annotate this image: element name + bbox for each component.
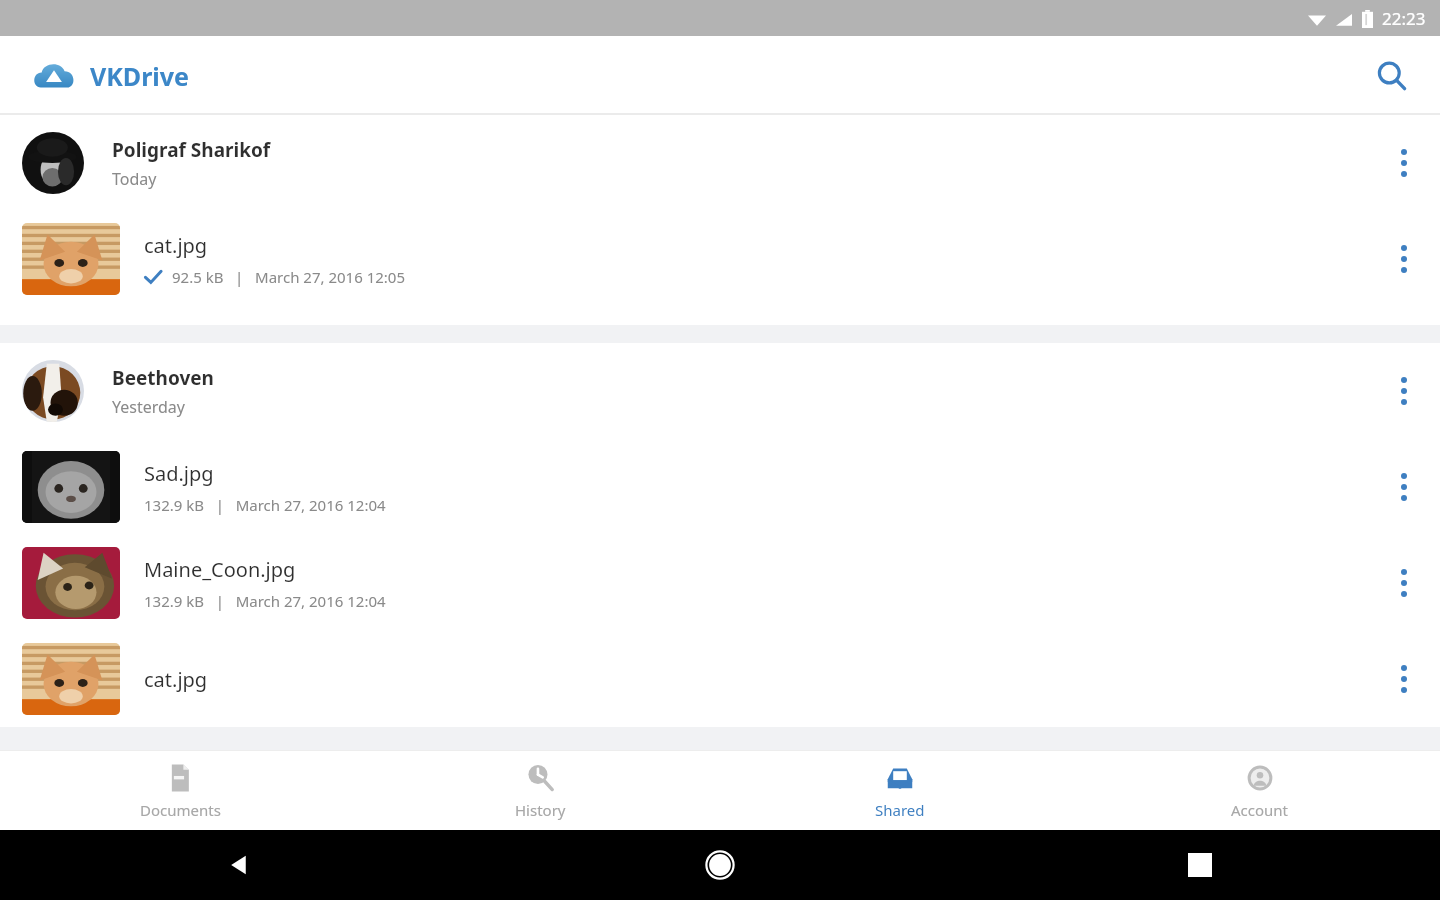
staticText: 92.5 kB | March 27, 2016 12:05 (172, 267, 406, 287)
button[interactable]: Account (1080, 750, 1440, 830)
staticText: Poligraf Sharikof (112, 137, 271, 163)
button[interactable]: Shared (720, 750, 1080, 830)
staticText: 132.9 kB | March 27, 2016 12:04 (144, 591, 386, 611)
button[interactable]: cat.jpg (0, 631, 1440, 727)
button[interactable]: Search (1364, 48, 1420, 104)
button[interactable]: History (360, 750, 720, 830)
button[interactable]: Poligraf Sharikof (0, 115, 1440, 211)
staticText: VKDrive (90, 59, 190, 93)
button[interactable]: Documents (0, 750, 360, 830)
staticText: cat.jpg (144, 232, 208, 259)
staticText: Account (1231, 800, 1289, 820)
staticText: cat.jpg (144, 666, 208, 693)
button[interactable]: VKDrive (32, 59, 190, 93)
button[interactable]: Recent apps (960, 830, 1440, 900)
button[interactable]: More options (1376, 135, 1432, 191)
button[interactable]: Beethoven (0, 343, 1440, 439)
button[interactable]: More options (1376, 459, 1432, 515)
staticText: Maine_Coon.jpg (144, 556, 296, 583)
staticText: History (515, 800, 566, 820)
staticText: Sad.jpg (144, 460, 214, 487)
button[interactable]: Back (0, 830, 480, 900)
staticText: Shared (875, 800, 925, 820)
button[interactable]: More options (1376, 231, 1432, 287)
button[interactable]: More options (1376, 651, 1432, 707)
button[interactable]: More options (1376, 363, 1432, 419)
staticText: 132.9 kB | March 27, 2016 12:04 (144, 495, 386, 515)
button[interactable]: Sad.jpg (0, 439, 1440, 535)
button[interactable]: Home (480, 830, 960, 900)
staticText: Today (112, 168, 157, 190)
staticText: Beethoven (112, 365, 214, 391)
staticText: 22:23 (1382, 7, 1426, 30)
staticText: Documents (140, 800, 221, 820)
button[interactable]: Maine_Coon.jpg (0, 535, 1440, 631)
button[interactable]: cat.jpg (0, 211, 1440, 307)
staticText: Yesterday (112, 396, 186, 418)
button[interactable]: More options (1376, 555, 1432, 611)
